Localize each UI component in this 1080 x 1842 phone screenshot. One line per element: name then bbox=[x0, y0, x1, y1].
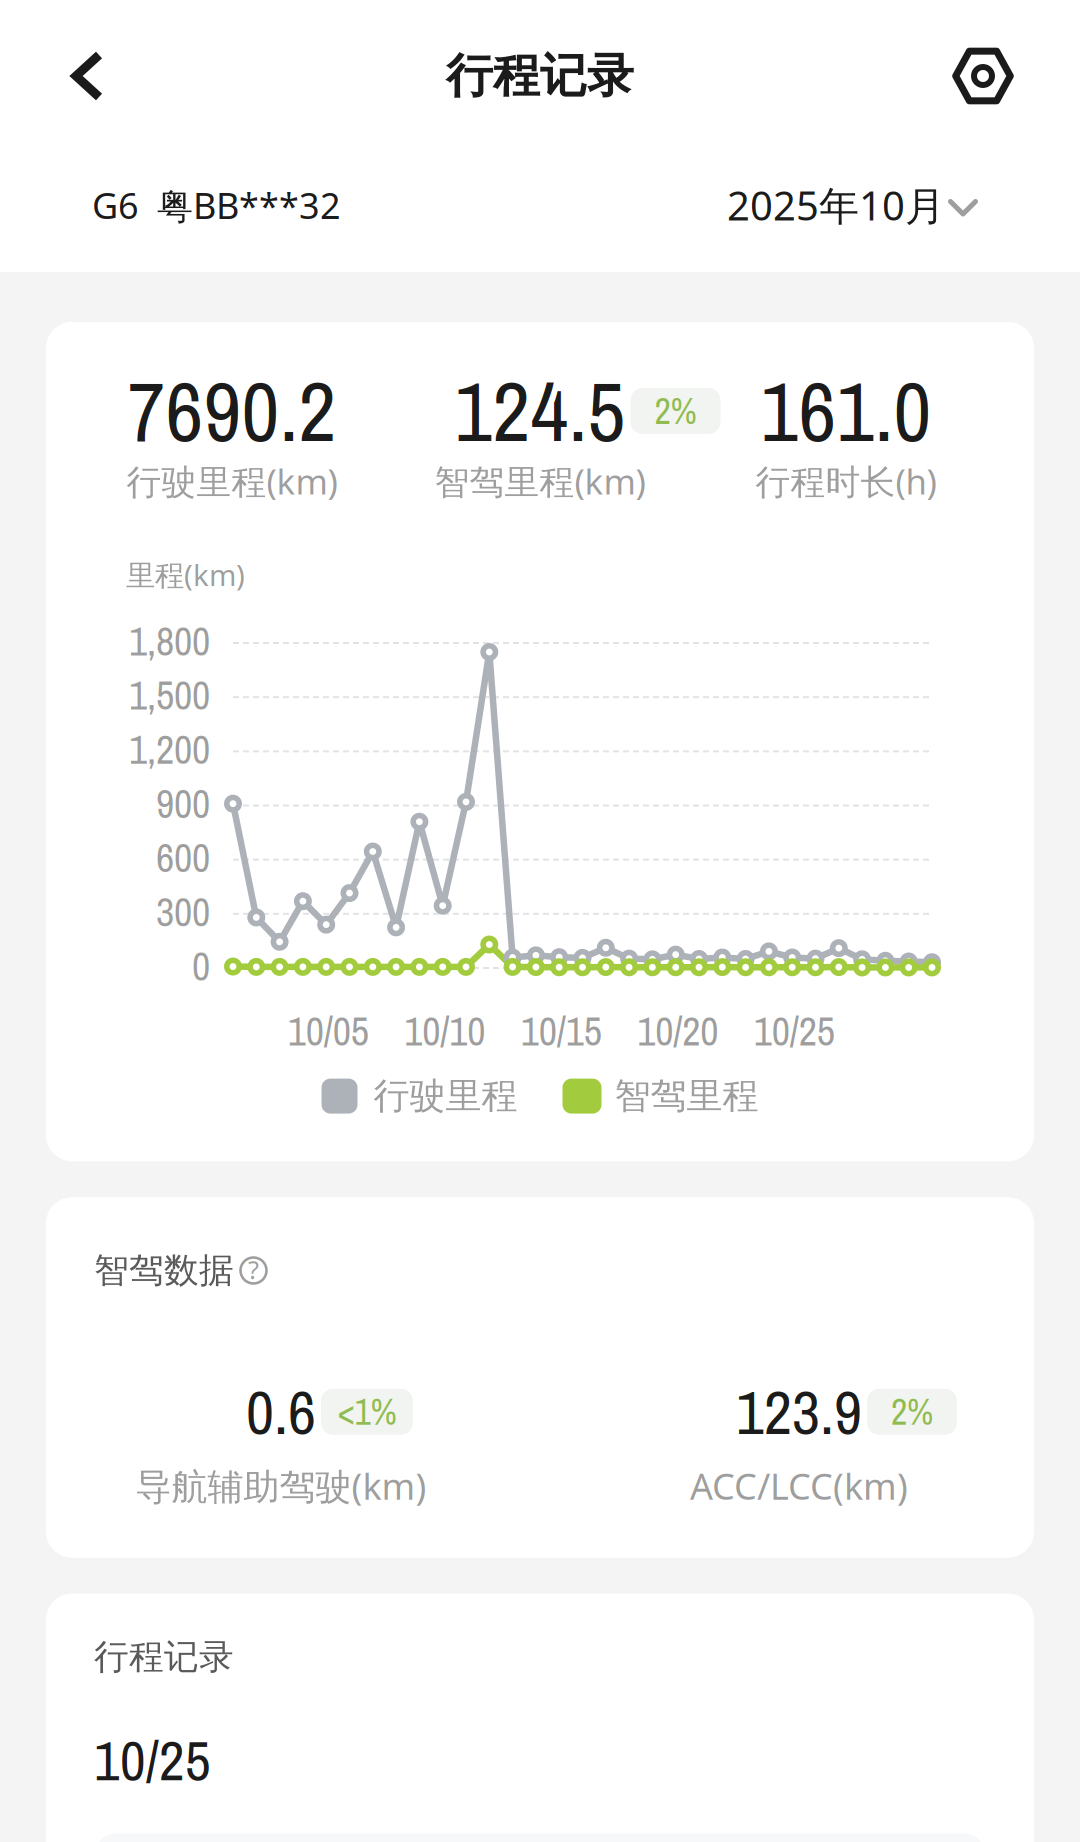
staticText: 1,200 bbox=[129, 722, 210, 776]
staticText: 124.5 bbox=[454, 355, 625, 467]
staticText: ACC/LCC(km) bbox=[690, 1462, 908, 1510]
staticText: 2025年10月 bbox=[727, 178, 945, 231]
button[interactable]: Settings bbox=[921, 25, 1080, 127]
staticText: 10/15 bbox=[521, 1004, 602, 1058]
staticText: 智驾数据 bbox=[94, 1249, 234, 1292]
staticText: 10/25 bbox=[754, 1004, 835, 1058]
staticText: 10/20 bbox=[637, 1004, 718, 1058]
staticText: ? bbox=[248, 1253, 259, 1286]
staticText: 2% bbox=[654, 387, 696, 435]
staticText: 行驶里程(km) bbox=[126, 458, 337, 504]
staticText: 300 bbox=[156, 885, 210, 939]
staticText: 1,800 bbox=[129, 614, 210, 668]
staticText: 行驶里程 bbox=[373, 1074, 517, 1118]
staticText: 2% bbox=[891, 1387, 933, 1436]
staticText: 10/05 bbox=[288, 1004, 369, 1058]
staticText: 行程记录 bbox=[446, 47, 634, 105]
staticText: 123.9 bbox=[736, 1370, 862, 1453]
staticText: 900 bbox=[156, 776, 210, 830]
staticText: 10/10 bbox=[404, 1004, 485, 1058]
staticText: 7690.2 bbox=[127, 355, 336, 467]
staticText: 里程(km) bbox=[126, 555, 245, 594]
staticText: 行程记录 bbox=[94, 1636, 234, 1678]
staticText: 智驾里程(km) bbox=[434, 458, 645, 504]
staticText: 1,500 bbox=[129, 668, 210, 722]
staticText: 行程时长(h) bbox=[755, 458, 936, 504]
staticText: 0.6 bbox=[246, 1370, 316, 1453]
staticText: G6 粤BB***32 bbox=[92, 181, 341, 229]
staticText: 导航辅助驾驶(km) bbox=[135, 1462, 426, 1510]
staticText: 0 bbox=[192, 939, 210, 993]
button[interactable]: Back bbox=[0, 24, 144, 128]
staticText: 智驾里程 bbox=[614, 1074, 758, 1118]
staticText: <1% bbox=[337, 1387, 396, 1436]
staticText: 10/25 bbox=[94, 1722, 211, 1798]
button[interactable]: 2025年10月 bbox=[727, 178, 978, 231]
staticText: 161.0 bbox=[760, 355, 931, 467]
staticText: 600 bbox=[156, 831, 210, 885]
